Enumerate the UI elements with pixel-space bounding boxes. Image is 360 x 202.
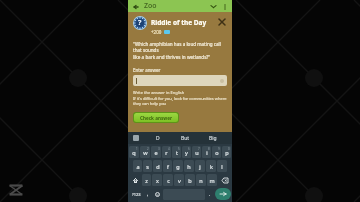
staticText: v (178, 177, 181, 184)
button[interactable]: k (206, 160, 216, 172)
button[interactable]: Backspace (218, 174, 231, 186)
staticText: p (225, 149, 229, 156)
staticText: +200 (151, 29, 162, 35)
button[interactable]: a (133, 160, 142, 172)
staticText: 0 (228, 147, 230, 151)
button[interactable]: r (162, 146, 171, 158)
staticText: t (176, 149, 178, 156)
button[interactable]: Keyboard settings (128, 132, 144, 144)
staticText: 3 (158, 147, 160, 151)
button[interactable]: d (153, 160, 162, 172)
button[interactable]: l (217, 160, 227, 172)
staticText: 2 (147, 147, 149, 151)
staticText: But (181, 135, 190, 142)
button[interactable]: But (172, 132, 199, 144)
staticText: 6 (188, 147, 190, 151)
button[interactable]: Shift (129, 174, 141, 186)
button[interactable]: w (140, 146, 150, 158)
staticText: i (206, 149, 208, 156)
staticText: m (209, 177, 215, 184)
staticText: Enter answer (133, 67, 161, 73)
staticText: k (210, 163, 213, 170)
staticText: Write the answer in English (133, 90, 185, 95)
button[interactable]: x (152, 174, 162, 186)
staticText: "Which amphibian has a loud mating call … (133, 41, 227, 60)
button[interactable]: Back (131, 2, 140, 11)
staticText: If it's difficult for you, look for comm… (133, 96, 227, 106)
button[interactable]: p (222, 146, 231, 158)
button[interactable]: Check answer (134, 113, 178, 122)
button[interactable]: z (142, 174, 151, 186)
staticText: 5 (178, 147, 180, 151)
staticText: Zoo (144, 1, 157, 11)
staticText: ? (138, 18, 142, 28)
button[interactable]: m (207, 174, 217, 186)
staticText: d (156, 163, 160, 170)
button[interactable]: v (174, 174, 184, 186)
button[interactable]: More options (220, 2, 229, 11)
button[interactable]: e (151, 146, 161, 158)
staticText: c (167, 177, 170, 184)
staticText: Riddle of the Day (151, 18, 207, 27)
button[interactable]: Close (216, 16, 227, 27)
staticText: r (165, 149, 168, 156)
staticText: h (187, 163, 191, 170)
button[interactable]: Enter (215, 188, 231, 200)
button[interactable]: i (202, 146, 211, 158)
staticText: 9 (218, 147, 220, 151)
button[interactable]: u (192, 146, 201, 158)
staticText: y (185, 149, 188, 156)
button[interactable]: s (143, 160, 152, 172)
button[interactable]: q (129, 146, 139, 158)
staticText: . (209, 191, 211, 198)
button[interactable]: c (163, 174, 173, 186)
staticText: q (132, 149, 136, 156)
button[interactable]: g (173, 160, 183, 172)
button[interactable]: D (144, 132, 172, 144)
staticText: 7 (198, 147, 200, 151)
staticText: l (221, 163, 223, 170)
button[interactable]: y (182, 146, 191, 158)
staticText: j (199, 163, 201, 170)
staticText: w (143, 149, 148, 156)
staticText: 4 (168, 147, 170, 151)
button[interactable]: j (195, 160, 205, 172)
staticText: z (145, 177, 148, 184)
button[interactable]: o (212, 146, 221, 158)
staticText: Big (209, 135, 217, 142)
button[interactable]: Comma (144, 188, 152, 200)
staticText: u (195, 149, 199, 156)
button[interactable]: Big (199, 132, 226, 144)
button[interactable]: ?123 (129, 188, 143, 200)
button[interactable] (133, 75, 227, 86)
button[interactable]: b (185, 174, 195, 186)
button[interactable]: Emoji (153, 188, 162, 200)
button[interactable]: Period (206, 188, 214, 200)
staticText: ?123 (132, 192, 141, 197)
staticText: D (156, 135, 160, 142)
button[interactable]: f (163, 160, 172, 172)
staticText: a (136, 163, 140, 170)
button[interactable]: h (184, 160, 194, 172)
staticText: o (215, 149, 219, 156)
staticText: f (167, 163, 169, 170)
staticText: g (176, 163, 180, 170)
staticText: b (188, 177, 192, 184)
staticText: Check answer (140, 115, 172, 121)
staticText: n (199, 177, 203, 184)
staticText: , (147, 191, 149, 198)
staticText: s (146, 163, 149, 170)
staticText: x (156, 177, 159, 184)
button[interactable]: t (172, 146, 181, 158)
button[interactable]: n (196, 174, 206, 186)
staticText: e (154, 149, 158, 156)
staticText: 8 (208, 147, 210, 151)
staticText: 1 (136, 147, 138, 151)
button[interactable]: Expand (209, 2, 218, 11)
